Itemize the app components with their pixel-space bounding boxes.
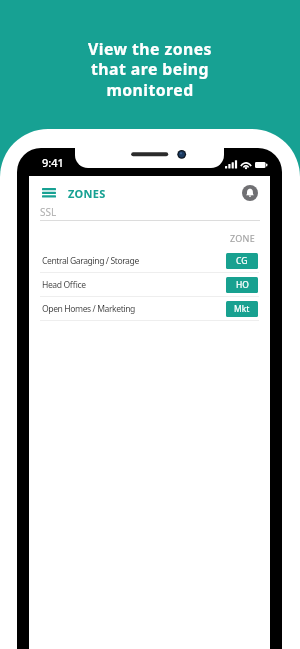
staticText: Mkt (234, 303, 250, 315)
staticText: ZONE (230, 232, 255, 244)
staticText: Central Garaging / Storage (42, 255, 139, 267)
staticText: SSL (40, 205, 57, 219)
staticText: Open Homes / Marketing (42, 303, 135, 315)
button[interactable]: Open navigation menu (38, 182, 59, 203)
button[interactable]: Notifications (242, 185, 258, 201)
staticText: CG (236, 255, 248, 267)
button[interactable]: Head Office (29, 273, 270, 296)
staticText: HO (236, 279, 249, 291)
staticText: 9:41 (42, 155, 64, 170)
staticText: View the zones that are being monitored (88, 38, 212, 101)
button[interactable]: Central Garaging / Storage (29, 249, 270, 272)
button[interactable]: Open Homes / Marketing (29, 297, 270, 320)
staticText: Head Office (42, 279, 86, 291)
staticText: ZONES (68, 186, 106, 201)
